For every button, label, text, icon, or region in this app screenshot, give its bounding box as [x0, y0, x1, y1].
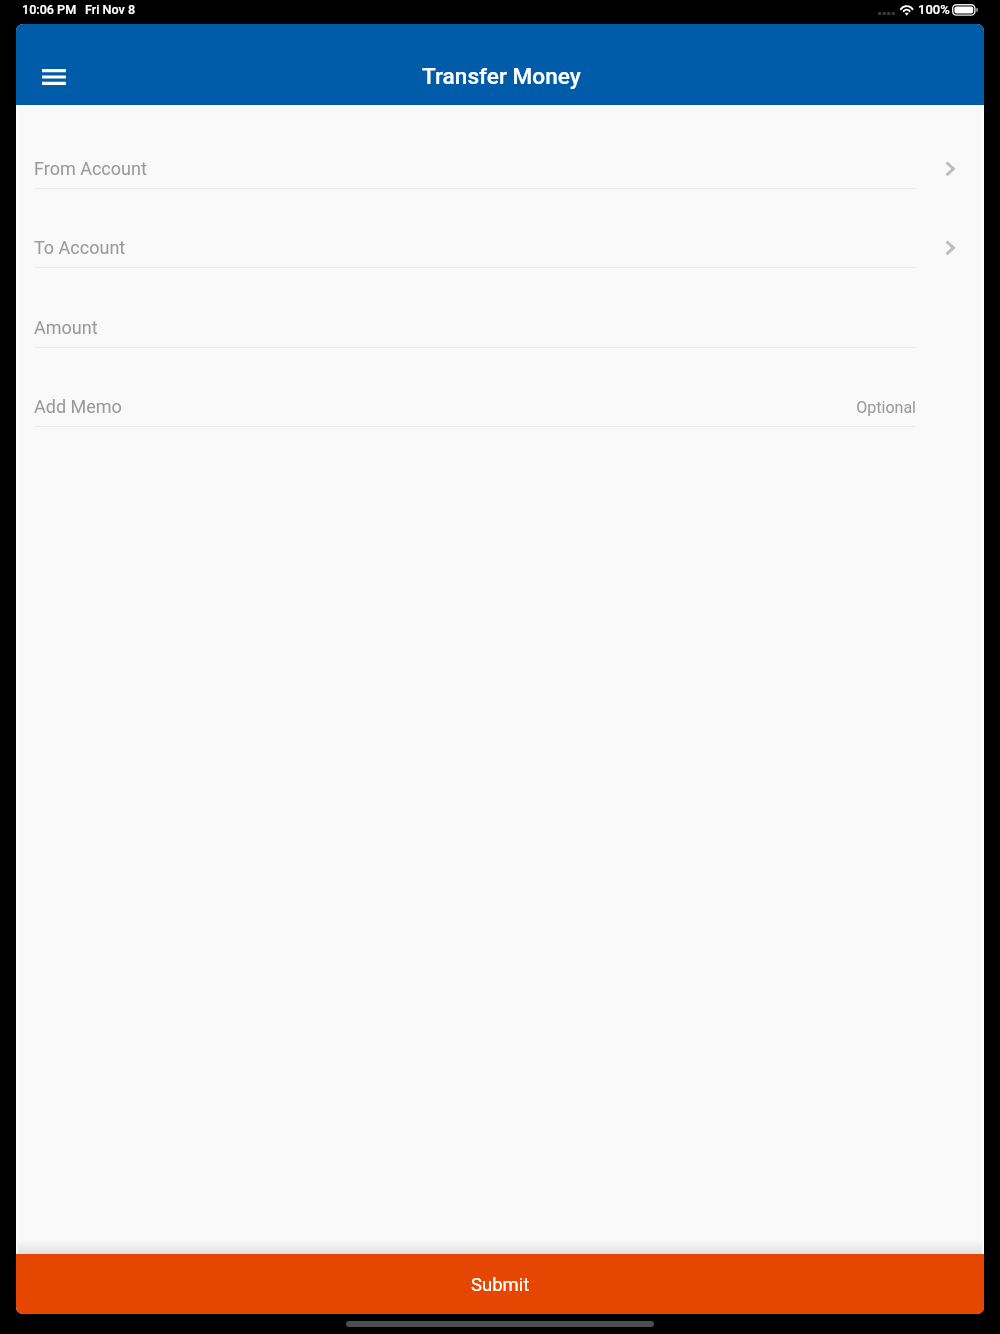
staticText: 10:06 PM — [22, 2, 77, 17]
staticText: Optional — [16, 398, 916, 417]
staticText: Transfer Money — [422, 63, 581, 89]
button[interactable]: Submit — [16, 1254, 984, 1314]
button[interactable]: Add Memo — [16, 347, 984, 427]
staticText: To Account — [34, 237, 126, 258]
button[interactable]: To Account — [16, 188, 984, 268]
staticText: Submit — [471, 1274, 530, 1296]
staticText: Add Memo — [34, 396, 122, 417]
staticText: 100% — [918, 2, 950, 17]
staticText: From Account — [34, 158, 147, 179]
button[interactable]: From Account — [16, 109, 984, 189]
staticText: Amount — [34, 317, 98, 338]
button[interactable]: Open navigation menu — [30, 53, 78, 101]
staticText: Fri Nov 8 — [85, 2, 136, 17]
button[interactable]: Amount — [16, 268, 984, 348]
